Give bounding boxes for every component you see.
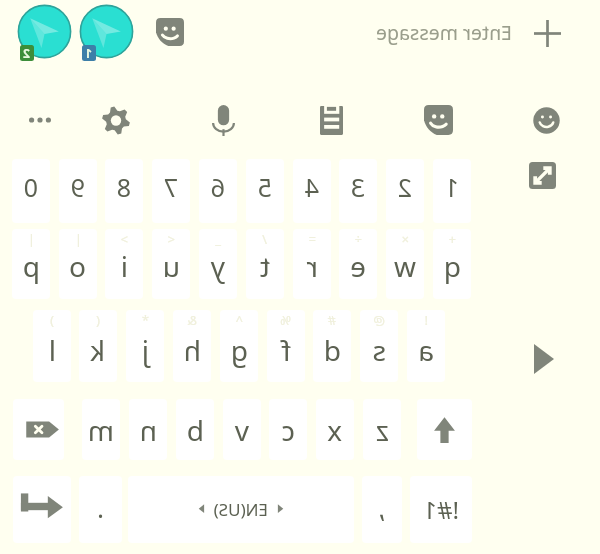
button[interactable]: Enter (13, 476, 71, 543)
staticText: a (418, 331, 434, 369)
staticText: 1 (444, 170, 459, 204)
staticText: 2 (23, 45, 30, 61)
staticText: % (280, 311, 291, 329)
button[interactable]: # (313, 310, 351, 382)
staticText: = (308, 230, 316, 248)
staticText: 8 (116, 170, 131, 204)
staticText: b (186, 411, 204, 449)
staticText: × (401, 230, 409, 248)
staticText: _ (215, 230, 221, 248)
button[interactable]: , (362, 476, 402, 543)
button[interactable]: Space (128, 476, 354, 543)
staticText: d (323, 331, 341, 369)
button[interactable]: Stickers (424, 105, 453, 135)
staticText: 9 (70, 170, 85, 204)
button[interactable]: 4 (293, 159, 331, 223)
button[interactable]: x (316, 399, 354, 460)
staticText: ! (424, 311, 428, 329)
button[interactable]: Emoji (533, 107, 560, 134)
staticText: | (74, 230, 82, 248)
button[interactable]: ( (79, 310, 117, 382)
button[interactable]: 9 (59, 159, 97, 223)
staticText: 2 (397, 170, 412, 204)
staticText: Enter message (376, 19, 512, 45)
button[interactable]: Send (534, 344, 554, 374)
staticText: y (210, 247, 225, 285)
staticText: j (141, 331, 149, 369)
staticText: h (183, 331, 201, 369)
staticText: n (139, 411, 157, 449)
button[interactable]: Settings (102, 105, 130, 136)
staticText: + (448, 230, 456, 248)
button[interactable]: !#1 (410, 476, 472, 543)
button[interactable]: m (82, 399, 120, 460)
staticText: | (27, 230, 35, 248)
staticText: g (230, 331, 248, 369)
button[interactable]: < (152, 229, 190, 299)
button[interactable]: & (173, 310, 211, 382)
staticText: ^ (235, 311, 243, 329)
staticText: p (22, 247, 40, 285)
staticText: 3 (350, 170, 365, 204)
button[interactable]: ÷ (339, 229, 377, 299)
button[interactable]: + (433, 229, 471, 299)
button[interactable]: > (105, 229, 143, 299)
staticText: o (69, 247, 86, 285)
staticText: 5 (257, 170, 272, 204)
button[interactable]: n (129, 399, 167, 460)
button[interactable]: % (267, 310, 305, 382)
staticText: > (120, 230, 128, 248)
staticText: EN(US) (213, 498, 268, 521)
button[interactable]: * (126, 310, 164, 382)
button[interactable]: More options (29, 112, 51, 128)
staticText: @ (373, 311, 385, 329)
button[interactable]: ^ (220, 310, 258, 382)
staticText: m (87, 411, 114, 449)
staticText: w (393, 247, 416, 285)
button[interactable]: 2 (386, 159, 424, 223)
button[interactable]: Add attachment (534, 20, 561, 47)
button[interactable]: 2 (17, 4, 72, 59)
staticText: u (162, 247, 180, 285)
button[interactable]: 1 (433, 159, 471, 223)
button[interactable]: ! (407, 310, 445, 382)
button[interactable]: ) (33, 310, 71, 382)
button[interactable]: Backspace (13, 399, 64, 460)
button[interactable]: v (223, 399, 261, 460)
staticText: z (375, 411, 389, 449)
button[interactable]: Shift (417, 399, 472, 460)
button[interactable]: 3 (339, 159, 377, 223)
button[interactable]: 5 (246, 159, 284, 223)
button[interactable]: × (386, 229, 424, 299)
button[interactable]: Voice input (212, 105, 235, 136)
button[interactable]: Clipboard (320, 106, 343, 135)
button[interactable]: = (293, 229, 331, 299)
button[interactable]: | (12, 229, 50, 299)
button[interactable]: 7 (152, 159, 190, 223)
staticText: q (443, 247, 461, 285)
staticText: r (306, 247, 318, 285)
staticText: k (90, 331, 105, 369)
button[interactable]: . (79, 476, 122, 543)
button[interactable]: 1 (79, 4, 134, 59)
staticText: i (120, 247, 128, 285)
staticText: 1 (85, 45, 92, 61)
button[interactable]: / (246, 229, 284, 299)
staticText: < (167, 230, 175, 248)
button[interactable]: Resize keyboard (529, 162, 556, 189)
staticText: , (378, 490, 385, 525)
button[interactable]: 8 (105, 159, 143, 223)
button[interactable]: @ (360, 310, 398, 382)
button[interactable]: _ (199, 229, 237, 299)
staticText: ( (96, 311, 100, 329)
button[interactable]: | (59, 229, 97, 299)
staticText: 0 (23, 170, 38, 204)
staticText: v (234, 411, 249, 449)
button[interactable]: c (269, 399, 307, 460)
staticText: # (327, 311, 336, 329)
button[interactable]: Stickers (156, 18, 184, 46)
button[interactable]: 0 (12, 159, 50, 223)
button[interactable]: z (363, 399, 401, 460)
button[interactable]: 6 (199, 159, 237, 223)
button[interactable]: b (176, 399, 214, 460)
